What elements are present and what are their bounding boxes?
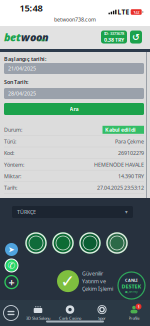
button[interactable]: TÜRKÇE [12, 206, 133, 218]
button[interactable]: More [5, 275, 18, 289]
staticText: .com [37, 37, 46, 42]
staticText: DESTEK [121, 283, 141, 290]
button[interactable]: ID: 3373678 [101, 30, 127, 43]
staticText: ID: 3373678 [104, 31, 124, 36]
staticText: Yöntem: [4, 161, 24, 168]
button[interactable]: Canlı Casino [54, 300, 86, 326]
staticText: HEMENÖDE HAVALE [94, 161, 144, 168]
staticText: Güvenilir [82, 270, 103, 277]
staticText: Kod: [4, 149, 14, 157]
staticText: Spor [98, 316, 106, 321]
staticText: ➤ [8, 245, 15, 254]
staticText: TÜRKÇE [17, 208, 36, 216]
staticText: Başlangıç tarihi: [4, 55, 46, 63]
staticText: betwoon738.com [54, 16, 96, 23]
staticText: woon [21, 30, 49, 44]
button[interactable]: Spor [86, 300, 118, 326]
staticText: 2691022?9 [118, 149, 144, 157]
staticText: 0.38 TRY [104, 36, 124, 43]
staticText: CANLI [125, 277, 138, 283]
button[interactable]: Telegram [5, 243, 18, 256]
staticText: ▾ [125, 209, 128, 215]
staticText: 28/04/2025 [8, 90, 36, 97]
staticText: Kabul edildi [105, 126, 136, 133]
button[interactable]: Ara [4, 103, 144, 115]
staticText: Türü: [4, 138, 16, 145]
staticText: LTE [117, 8, 129, 16]
staticText: ↺ [132, 32, 140, 42]
button[interactable]: WhatsApp [5, 259, 18, 272]
staticText: 15:48 [19, 2, 42, 14]
staticText: Çekim İşlemi [82, 285, 113, 292]
staticText: 3D Slot Salonu [26, 316, 50, 321]
button[interactable]: Refresh balance [130, 30, 142, 43]
staticText: 21/04/2025 [8, 65, 36, 72]
staticText: Durum: [4, 126, 22, 133]
staticText: Ara [69, 105, 78, 113]
staticText: bet [4, 30, 21, 44]
staticText: Canlı Casino [59, 316, 81, 321]
staticText: Miktar: [4, 173, 21, 180]
staticText: Profile [128, 316, 139, 321]
staticText: + [8, 275, 14, 289]
staticText: Yatırım ve [82, 278, 106, 285]
button[interactable]: CANLI [118, 272, 145, 299]
staticText: Tarih: [4, 184, 17, 191]
staticText: ●Çevrimiçi [125, 290, 138, 293]
staticText: ✆ [7, 260, 15, 271]
staticText: ✓ [60, 271, 75, 291]
staticText: 14.390 TRY [118, 173, 144, 180]
staticText: 122 [133, 9, 139, 15]
button[interactable]: Menu [0, 300, 22, 326]
staticText: 27.04.2025 23:53:12 [97, 184, 144, 191]
button[interactable]: 3D Slot Salonu [22, 300, 54, 326]
button[interactable]: 1 [118, 300, 150, 326]
staticText: 1 [137, 304, 139, 309]
staticText: Para Çekme [115, 138, 144, 145]
staticText: Son Tarih: [4, 78, 28, 86]
